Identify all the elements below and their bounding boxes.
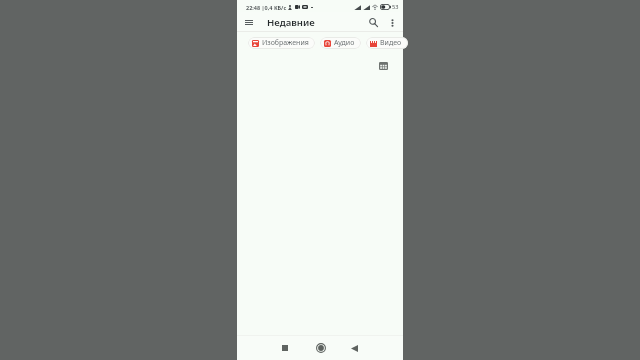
staticText: 22:48 |0,4 KБ/с — [246, 4, 287, 11]
button[interactable]: Back — [346, 340, 362, 356]
button[interactable]: More options — [385, 13, 399, 33]
button[interactable]: Change view layout — [376, 59, 390, 73]
button[interactable]: Home — [313, 340, 329, 356]
staticText: Изображения — [262, 38, 309, 48]
button[interactable]: Изображения — [248, 37, 315, 49]
staticText: Видео — [380, 38, 402, 48]
button[interactable]: Open navigation menu — [240, 12, 257, 32]
staticText: 53 — [392, 3, 399, 11]
button[interactable]: Recent apps — [277, 340, 293, 356]
button[interactable]: Search — [365, 12, 381, 32]
staticText: Недавние — [267, 16, 315, 29]
staticText: Аудио — [334, 38, 355, 48]
button[interactable]: Видео — [366, 37, 408, 49]
button[interactable]: Аудио — [320, 37, 361, 49]
